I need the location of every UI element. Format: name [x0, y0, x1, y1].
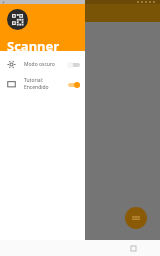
staticText: Encendido	[24, 84, 49, 91]
button[interactable]: Modo oscuro	[0, 54, 85, 74]
button[interactable]: Scan	[125, 207, 147, 229]
staticText: Tutorial:	[24, 77, 44, 84]
staticText: Modo oscuro	[24, 61, 55, 68]
button[interactable]: Recents	[107, 240, 160, 256]
button[interactable]: Tutorial:	[0, 74, 85, 94]
staticText: Scanner	[7, 37, 60, 51]
